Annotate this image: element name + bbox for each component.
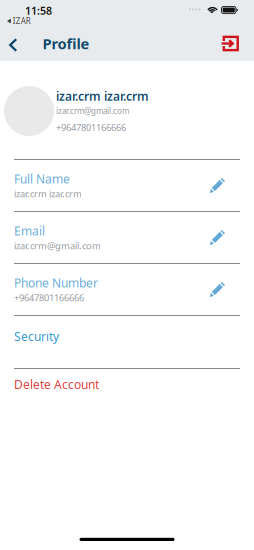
staticText: izar.crm@gmail.com	[56, 105, 129, 116]
staticText: Email	[14, 223, 45, 239]
staticText: Phone Number	[14, 275, 98, 291]
button[interactable]: Full Name	[0, 160, 254, 212]
staticText: +9647801166666	[56, 121, 126, 133]
button[interactable]: Phone Number	[0, 264, 254, 316]
staticText: Full Name	[14, 171, 70, 187]
staticText: izar.crm izar.crm	[14, 187, 82, 200]
button[interactable]: Security	[0, 316, 254, 369]
staticText: Delete Account	[14, 376, 99, 392]
staticText: izar.crm@gmail.com	[14, 239, 101, 252]
button[interactable]: Log out	[215, 26, 246, 61]
staticText: izar.crm izar.crm	[56, 88, 149, 104]
staticText: +9647801166666	[14, 291, 84, 304]
staticText: Profile	[42, 34, 89, 53]
staticText: 11:58	[25, 3, 52, 18]
staticText: IZAR	[13, 16, 31, 26]
button[interactable]: Email	[0, 212, 254, 264]
button[interactable]: Delete Account	[0, 369, 254, 421]
staticText: Security	[14, 328, 59, 344]
button[interactable]: Back	[0, 26, 25, 61]
